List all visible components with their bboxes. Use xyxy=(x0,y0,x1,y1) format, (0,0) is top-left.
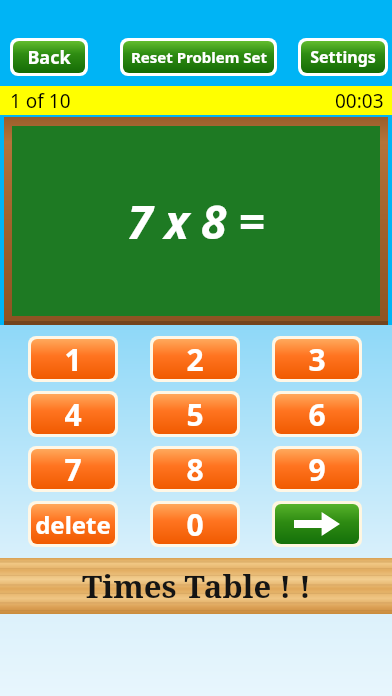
button[interactable]: 9 xyxy=(275,449,359,489)
staticText: 2 xyxy=(186,339,204,379)
staticText: 6 xyxy=(308,394,326,434)
staticText: Reset Problem Set xyxy=(131,47,267,67)
staticText: 00:03 xyxy=(335,88,384,114)
button[interactable]: 8 xyxy=(153,449,237,489)
staticText: 1 of 10 xyxy=(10,88,71,114)
staticText: delete xyxy=(35,508,111,541)
staticText: 5 xyxy=(186,394,204,434)
staticText: 0 xyxy=(186,504,204,544)
staticText: 7 xyxy=(64,449,82,489)
button[interactable]: Settings xyxy=(301,41,385,73)
staticText: 1 xyxy=(64,339,82,379)
button[interactable]: delete xyxy=(31,504,115,544)
staticText: 8 xyxy=(186,449,204,489)
button[interactable]: 4 xyxy=(31,394,115,434)
staticText: Back xyxy=(27,45,71,70)
button[interactable]: Back xyxy=(13,41,85,73)
button[interactable]: Reset Problem Set xyxy=(123,41,274,73)
staticText: 7 x 8 = xyxy=(127,190,265,253)
staticText: 3 xyxy=(308,339,326,379)
button[interactable]: 7 xyxy=(31,449,115,489)
button[interactable]: 1 xyxy=(31,339,115,379)
staticText: 4 xyxy=(64,394,82,434)
button[interactable]: 5 xyxy=(153,394,237,434)
button[interactable]: 3 xyxy=(275,339,359,379)
button[interactable]: 0 xyxy=(153,504,237,544)
button[interactable]: 2 xyxy=(153,339,237,379)
button[interactable]: 6 xyxy=(275,394,359,434)
staticText: Settings xyxy=(310,46,376,68)
staticText: Times Table ! ! xyxy=(82,565,311,607)
staticText: 9 xyxy=(308,449,326,489)
button[interactable]: Submit answer xyxy=(275,504,359,544)
